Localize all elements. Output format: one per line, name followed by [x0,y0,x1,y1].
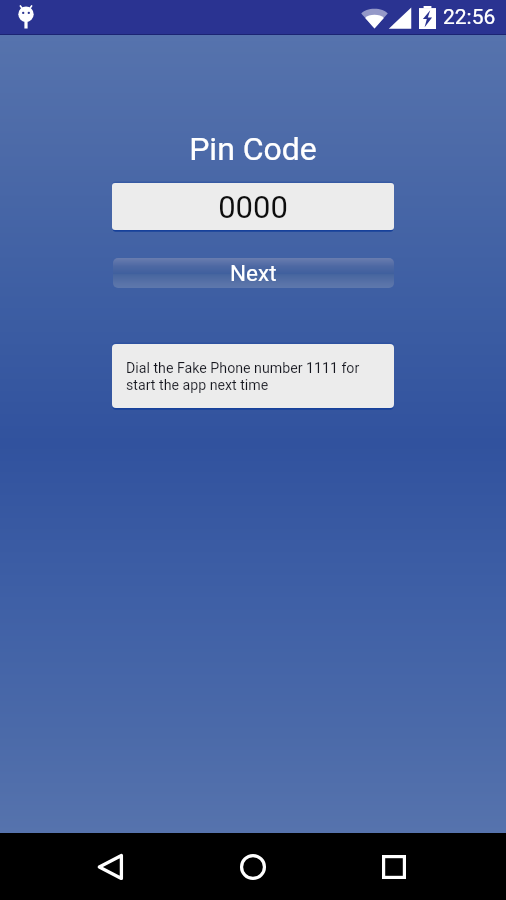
button[interactable]: Home [221,835,285,899]
staticText: 0000 [218,189,288,225]
staticText: 22:56 [443,5,496,30]
button[interactable]: 0000 [112,183,394,230]
button[interactable]: Next [113,258,394,288]
button[interactable]: Dial the Fake Phone number 1111 for star… [112,344,394,408]
staticText: Pin Code [189,130,317,168]
staticText: Dial the Fake Phone number 1111 for star… [126,360,386,393]
button[interactable]: Back [79,835,143,899]
button[interactable]: Recent apps [364,835,428,899]
staticText: Next [230,260,277,286]
